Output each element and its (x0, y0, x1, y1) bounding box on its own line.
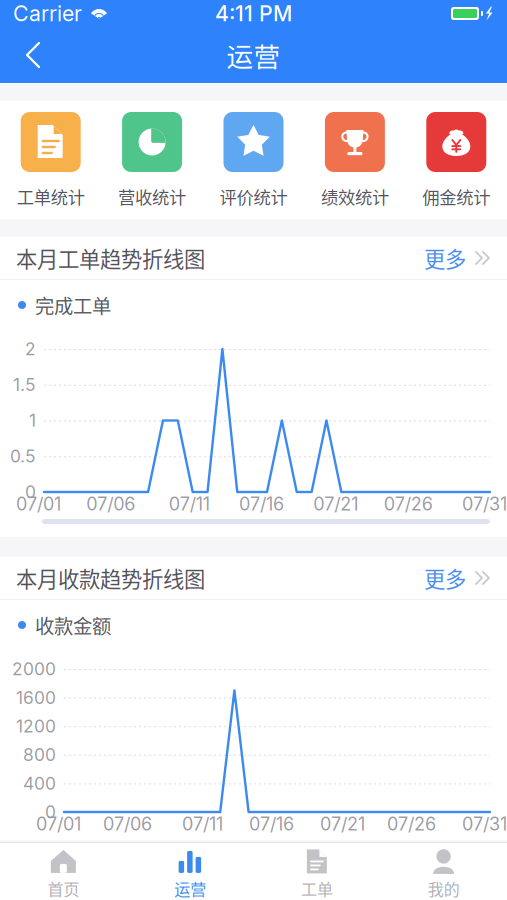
staticText: 0 (45, 801, 56, 822)
button[interactable]: 更多 (424, 553, 491, 603)
staticText: 评价统计 (219, 184, 287, 209)
staticText: 07/16 (249, 813, 294, 835)
staticText: 2000 (12, 658, 56, 679)
staticText: 07/21 (320, 813, 365, 835)
staticText: 佣金统计 (422, 184, 490, 209)
button[interactable]: 绩效统计 (304, 101, 406, 219)
staticText: 4:11 PM (215, 1, 292, 26)
button[interactable]: 评价统计 (203, 101, 304, 219)
staticText: 更多 (424, 243, 466, 273)
staticText: 运营 (174, 877, 206, 900)
staticText: 首页 (47, 877, 79, 900)
button[interactable]: 首页 (0, 843, 127, 900)
staticText: 400 (23, 773, 56, 794)
staticText: 07/26 (384, 493, 433, 515)
staticText: 07/16 (239, 493, 284, 515)
button[interactable]: 佣金统计 (406, 101, 507, 219)
staticText: 工单统计 (17, 184, 85, 209)
staticText: 0.5 (10, 446, 36, 467)
staticText: 07/06 (86, 493, 135, 515)
staticText: 1 (29, 410, 36, 431)
staticText: 07/31 (462, 493, 507, 515)
staticText: 07/11 (169, 493, 210, 515)
staticText: 07/26 (387, 813, 436, 835)
staticText: 1.5 (13, 374, 36, 395)
staticText: 0 (25, 481, 36, 502)
button[interactable]: 运营 (127, 843, 254, 900)
staticText: 07/21 (313, 493, 358, 515)
staticText: Carrier (13, 1, 82, 26)
staticText: 07/01 (36, 813, 81, 835)
staticText: 07/06 (103, 813, 152, 835)
staticText: 2 (25, 338, 36, 359)
button[interactable]: 更多 (424, 233, 491, 283)
staticText: 07/31 (462, 813, 507, 835)
staticText: 07/11 (182, 813, 223, 835)
button[interactable]: 我的 (380, 843, 507, 900)
button[interactable]: 营收统计 (101, 101, 203, 219)
button[interactable]: 返回 (0, 27, 56, 83)
staticText: 运营 (226, 36, 280, 74)
staticText: 07/01 (16, 493, 61, 515)
staticText: 绩效统计 (321, 184, 389, 209)
button[interactable]: 工单 (253, 843, 380, 900)
staticText: 本月收款趋势折线图 (16, 563, 205, 593)
button[interactable]: 工单统计 (0, 101, 101, 219)
staticText: 1200 (16, 716, 56, 737)
staticText: 收款金额 (35, 611, 111, 639)
staticText: 营收统计 (118, 184, 186, 209)
staticText: 本月工单趋势折线图 (16, 243, 205, 273)
staticText: 完成工单 (35, 291, 111, 319)
staticText: 800 (23, 744, 56, 765)
staticText: 我的 (428, 877, 460, 900)
staticText: 1600 (16, 687, 56, 708)
staticText: 工单 (301, 877, 333, 900)
staticText: 更多 (424, 563, 466, 593)
